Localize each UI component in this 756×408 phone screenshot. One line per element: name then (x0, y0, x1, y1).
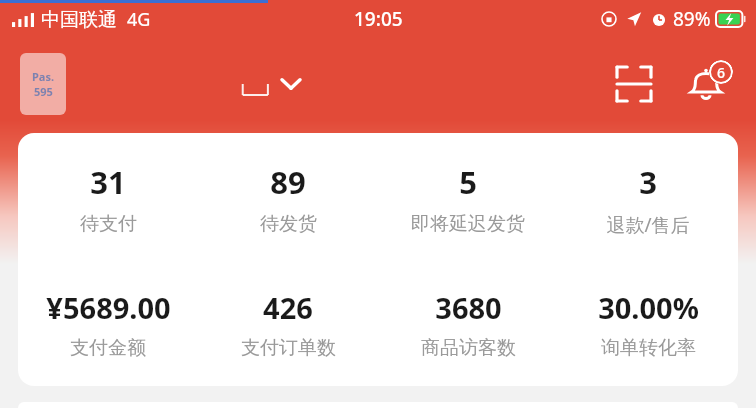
staticText: 426 (263, 288, 313, 327)
button[interactable]: 3680 (378, 288, 558, 360)
button[interactable]: 426 (198, 288, 378, 360)
staticText: 6 (717, 63, 726, 82)
staticText: 89 (270, 161, 306, 203)
staticText: 31 (90, 161, 126, 203)
staticText: 商品访客数 (421, 336, 516, 360)
staticText: 3 (639, 161, 657, 203)
staticText: 595 (34, 84, 53, 99)
staticText: 退款/售后 (606, 212, 690, 238)
button[interactable]: Scan (608, 58, 660, 110)
staticText: 3680 (435, 288, 502, 327)
staticText: ¥5689.00 (46, 288, 171, 327)
staticText: 即将延迟发货 (411, 212, 525, 236)
staticText: 5 (459, 161, 477, 203)
staticText: 89% (673, 6, 711, 32)
button[interactable]: 30.00% (558, 288, 738, 360)
staticText: 支付金额 (70, 336, 146, 360)
button[interactable]: 3 (558, 161, 738, 238)
button[interactable]: Select shop (90, 60, 300, 108)
button[interactable]: Notifications (678, 56, 734, 112)
button[interactable]: 5 (378, 161, 558, 236)
staticText: 支付订单数 (241, 336, 336, 360)
staticText: 4G (127, 7, 151, 32)
staticText: 待发货 (260, 212, 317, 236)
staticText: 中国联通 (41, 8, 117, 32)
button[interactable]: Pas. (20, 53, 66, 115)
staticText: 30.00% (598, 288, 699, 327)
staticText: 19:05 (354, 6, 403, 32)
staticText: 待支付 (80, 212, 137, 236)
button[interactable]: 31 (18, 161, 198, 236)
staticText: 询单转化率 (601, 336, 696, 360)
staticText: Pas. (32, 69, 55, 84)
button[interactable]: 89 (198, 161, 378, 236)
button[interactable]: ¥5689.00 (18, 288, 198, 360)
